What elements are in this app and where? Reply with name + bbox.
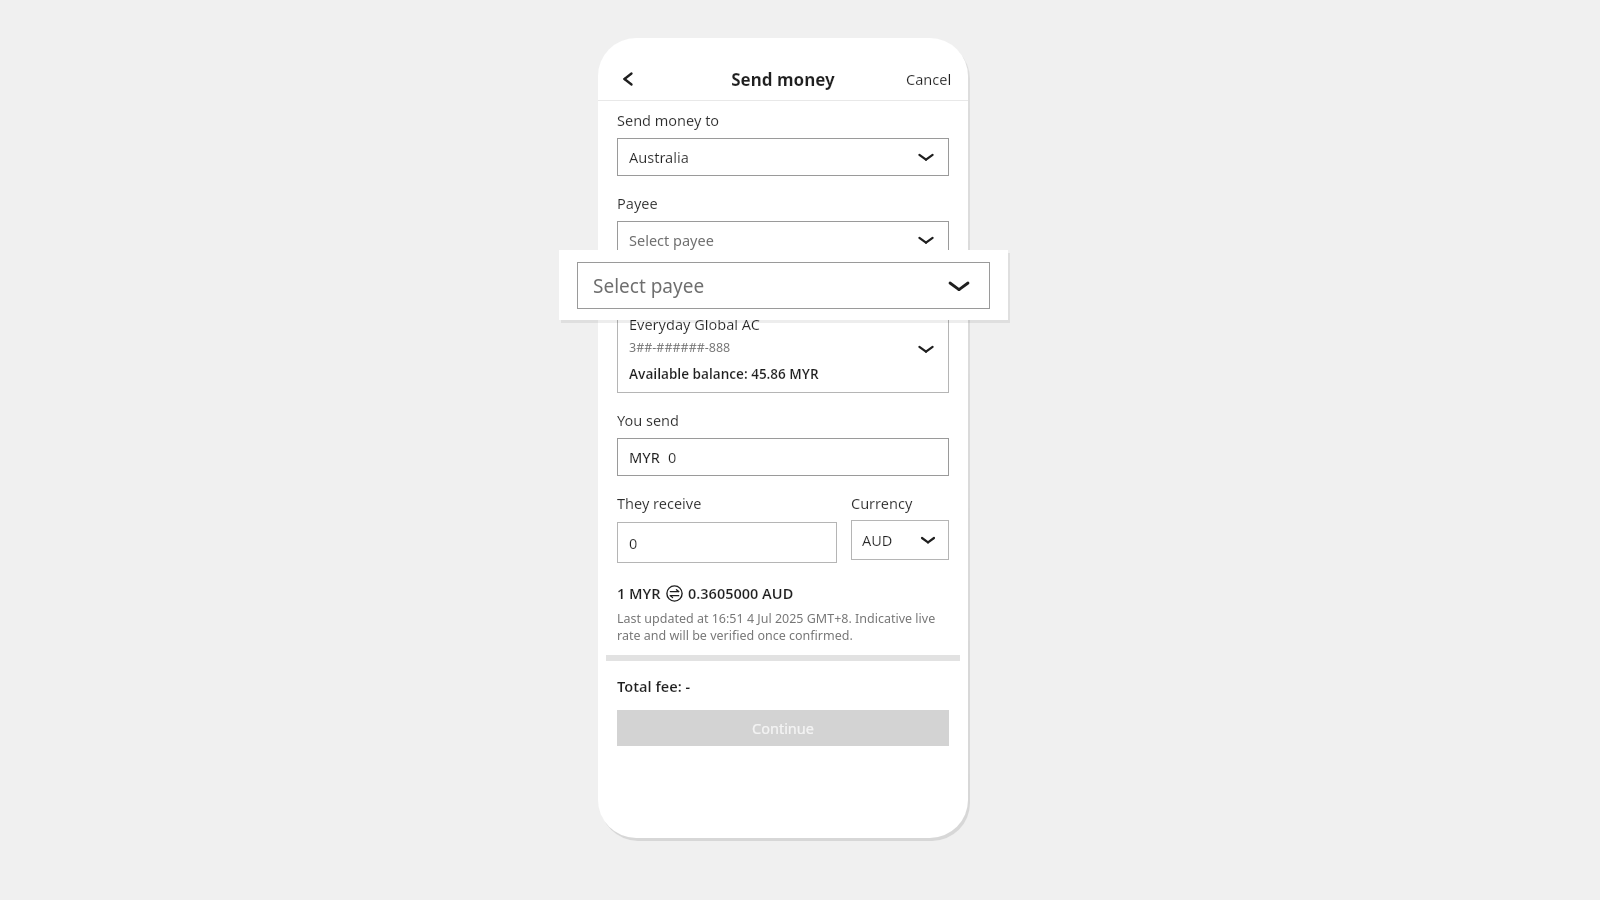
staticText: Send money [731, 68, 835, 91]
staticText: Last updated at 16:51 4 Jul 2025 GMT+8. … [617, 610, 949, 643]
button[interactable]: Cancel [890, 61, 968, 97]
button[interactable]: Select payee [617, 221, 949, 259]
staticText: Currency [851, 493, 913, 513]
staticText: MYR [629, 447, 660, 467]
button[interactable]: Australia [617, 138, 949, 176]
staticText: Total fee: - [617, 676, 691, 696]
button[interactable]: Back [608, 59, 648, 99]
button[interactable]: Everyday Global AC [617, 304, 949, 393]
staticText: Australia [629, 147, 915, 167]
staticText: Everyday Global AC [629, 314, 760, 334]
staticText: Continue [752, 718, 814, 738]
button[interactable]: AUD [851, 520, 949, 560]
staticText: 0 [668, 447, 677, 467]
button[interactable]: Continue [617, 710, 949, 746]
staticText: 0 [629, 533, 638, 553]
staticText: You send [617, 410, 679, 430]
button[interactable]: MYR [617, 438, 949, 476]
staticText: 3##-######-888 [629, 339, 731, 356]
staticText: 1 MYR [617, 583, 661, 603]
staticText: Select payee [593, 273, 944, 299]
staticText: 0.3605000 AUD [688, 583, 794, 603]
staticText: Send money to [617, 110, 720, 130]
staticText: Available balance: 45.86 MYR [629, 365, 819, 383]
staticText: Payee [617, 193, 658, 213]
staticText: Select payee [629, 230, 915, 250]
staticText: AUD [862, 530, 918, 550]
staticText: Cancel [906, 69, 952, 89]
button[interactable]: 0 [617, 522, 837, 563]
button[interactable]: Select payee [577, 262, 990, 309]
staticText: From [617, 276, 653, 296]
staticText: They receive [617, 493, 702, 513]
